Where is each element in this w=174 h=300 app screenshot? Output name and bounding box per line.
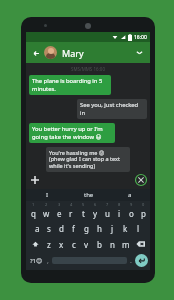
button[interactable]: the xyxy=(68,189,109,201)
button[interactable]: d xyxy=(55,220,67,236)
button[interactable]: 8 xyxy=(113,202,125,220)
staticText: x xyxy=(59,239,64,250)
button[interactable]: z xyxy=(43,236,55,252)
button[interactable]: 9 xyxy=(125,202,137,220)
staticText: the xyxy=(84,191,94,199)
staticText: w xyxy=(43,208,50,219)
staticText: The plane is boarding in 5 minutes. xyxy=(32,77,108,93)
staticText: o xyxy=(129,208,134,219)
staticText: c xyxy=(72,239,76,250)
button[interactable]: You better hurry up or I'm going take th… xyxy=(32,125,112,141)
staticText: SMS/MMS 16:00 xyxy=(71,66,106,72)
button[interactable]: n xyxy=(106,236,119,252)
staticText: b xyxy=(97,239,102,250)
staticText: , xyxy=(47,256,49,266)
staticText: s xyxy=(47,223,51,234)
staticText: g xyxy=(84,223,89,234)
button[interactable]: 3 xyxy=(53,202,65,220)
button[interactable]: s xyxy=(43,220,55,236)
button[interactable]: j xyxy=(106,220,119,236)
staticText: e xyxy=(57,208,62,219)
staticText: t xyxy=(82,208,85,219)
button[interactable]: h xyxy=(93,220,106,236)
button[interactable]: ?1😊 xyxy=(28,252,44,269)
staticText: v xyxy=(84,239,89,250)
button[interactable]: 6 xyxy=(89,202,101,220)
staticText: u xyxy=(105,208,110,219)
button[interactable]: Attach xyxy=(28,173,42,187)
button[interactable]: b xyxy=(93,236,106,252)
button[interactable]: I xyxy=(26,189,68,201)
button[interactable]: The plane is boarding in 5 minutes. xyxy=(32,77,108,93)
staticText: 1 xyxy=(32,202,35,207)
button[interactable]: 4 xyxy=(65,202,77,220)
button[interactable]: x xyxy=(55,236,67,252)
staticText: y xyxy=(93,208,98,219)
staticText: Mary xyxy=(62,47,84,59)
staticText: i xyxy=(118,208,121,219)
staticText: 0 xyxy=(142,202,145,207)
staticText: a xyxy=(128,191,132,199)
staticText: n xyxy=(110,239,115,250)
staticText: I xyxy=(46,191,49,199)
staticText: z xyxy=(47,239,51,250)
button[interactable]: v xyxy=(80,236,93,252)
button[interactable]: You're hassling me 😡 (phew glad I can st… xyxy=(49,149,127,170)
staticText: 8 xyxy=(118,202,121,207)
button[interactable]: 2 xyxy=(40,202,53,220)
button[interactable]: a xyxy=(31,220,43,236)
button[interactable]: Back xyxy=(30,47,42,59)
staticText: k xyxy=(123,223,128,234)
button[interactable]: Enter xyxy=(135,254,148,267)
button[interactable]: k xyxy=(119,220,132,236)
button[interactable]: See you, just checked in xyxy=(80,101,144,117)
staticText: 16:00 xyxy=(134,34,147,41)
button[interactable]: 1 xyxy=(27,202,40,220)
staticText: 7 xyxy=(106,202,109,207)
staticText: You're hassling me 😡 (phew glad I can st… xyxy=(49,149,127,170)
button[interactable]: 7 xyxy=(101,202,113,220)
staticText: l xyxy=(137,223,140,234)
staticText: d xyxy=(59,223,64,234)
button[interactable]: More options xyxy=(133,46,146,59)
button[interactable]: Shift xyxy=(27,236,43,252)
staticText: 9 xyxy=(130,202,133,207)
staticText: 6 xyxy=(94,202,97,207)
staticText: 4 xyxy=(70,202,73,207)
staticText: 5 xyxy=(82,202,85,207)
staticText: r xyxy=(69,208,73,219)
staticText: 3 xyxy=(58,202,61,207)
button[interactable]: c xyxy=(67,236,80,252)
button[interactable]: Cancel sending xyxy=(134,173,148,187)
button[interactable]: g xyxy=(80,220,93,236)
button[interactable]: Backspace xyxy=(132,236,149,252)
button[interactable]: 5 xyxy=(77,202,89,220)
staticText: You better hurry up or I'm going take th… xyxy=(32,125,112,141)
button[interactable]: Contact photo xyxy=(44,46,57,59)
button[interactable]: 0 xyxy=(137,202,149,220)
staticText: 2 xyxy=(45,202,48,207)
staticText: f xyxy=(72,223,75,234)
button[interactable]: . xyxy=(127,252,135,269)
staticText: h xyxy=(97,223,102,234)
staticText: . xyxy=(130,256,132,266)
staticText: j xyxy=(111,223,114,234)
staticText: ?1😊 xyxy=(30,257,43,265)
button[interactable]: l xyxy=(132,220,145,236)
button[interactable]: m xyxy=(119,236,132,252)
staticText: p xyxy=(141,208,146,219)
staticText: a xyxy=(35,223,40,234)
staticText: m xyxy=(122,239,130,250)
button[interactable]: , xyxy=(44,252,52,269)
button[interactable]: f xyxy=(67,220,80,236)
staticText: See you, just checked in xyxy=(80,101,144,117)
button[interactable]: a xyxy=(109,189,150,201)
staticText: q xyxy=(31,208,36,219)
